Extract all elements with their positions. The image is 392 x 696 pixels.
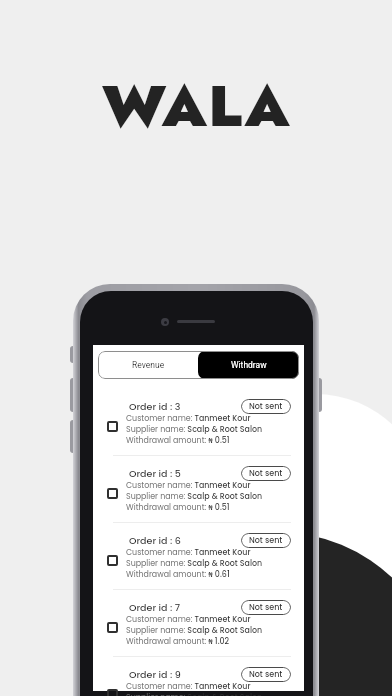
staticText: Customer name: Tanmeet Kour — [126, 614, 251, 625]
staticText: Withdrawal amount: ₦ 0.51 — [126, 502, 230, 513]
button[interactable]: Not sent — [241, 667, 291, 682]
staticText: WALA — [102, 64, 291, 148]
button[interactable]: Not sent — [241, 399, 291, 414]
staticText: Order id : 9 — [129, 668, 181, 681]
button[interactable]: Select order 5 — [107, 488, 118, 499]
staticText: Not sent — [249, 669, 283, 680]
staticText: Order id : 5 — [129, 467, 181, 480]
staticText: Order id : 7 — [129, 601, 181, 614]
staticText: Not sent — [249, 401, 283, 412]
staticText: Order id : 3 — [129, 400, 181, 413]
button[interactable]: Select order 9 — [107, 689, 118, 696]
staticText: Revenue — [132, 360, 165, 370]
staticText: Supplier name: Scalp & Root Salon — [126, 692, 263, 696]
staticText: Order id : 6 — [129, 534, 181, 547]
staticText: Withdrawal amount: ₦ 0.61 — [126, 569, 230, 580]
button[interactable]: Select order 5 — [93, 457, 304, 524]
button[interactable]: Select order 6 — [107, 555, 118, 566]
staticText: Not sent — [249, 602, 283, 613]
button[interactable]: Select order 3 — [93, 390, 304, 457]
button[interactable]: Revenue — [98, 351, 198, 379]
button[interactable]: Select order 6 — [93, 524, 304, 591]
staticText: Supplier name: Scalp & Root Salon — [126, 491, 263, 502]
button[interactable]: Not sent — [241, 600, 291, 615]
staticText: Customer name: Tanmeet Kour — [126, 681, 251, 692]
button[interactable]: Select order 3 — [107, 421, 118, 432]
button[interactable]: Select order 9 — [93, 658, 304, 696]
staticText: Withdrawal amount: ₦ 0.51 — [126, 435, 230, 446]
staticText: Not sent — [249, 535, 283, 546]
staticText: Supplier name: Scalp & Root Salon — [126, 558, 263, 569]
staticText: Customer name: Tanmeet Kour — [126, 547, 251, 558]
staticText: Not sent — [249, 468, 283, 479]
staticText: Customer name: Tanmeet Kour — [126, 480, 251, 491]
staticText: Supplier name: Scalp & Root Salon — [126, 625, 263, 636]
staticText: Withdraw — [231, 360, 267, 370]
staticText: Supplier name: Scalp & Root Salon — [126, 424, 263, 435]
staticText: Customer name: Tanmeet Kour — [126, 413, 251, 424]
button[interactable]: Select order 7 — [107, 622, 118, 633]
button[interactable]: Withdraw — [198, 351, 299, 379]
button[interactable]: Not sent — [241, 533, 291, 548]
staticText: Withdrawal amount: ₦ 1.02 — [126, 636, 230, 647]
button[interactable]: Select order 7 — [93, 591, 304, 658]
button[interactable]: Not sent — [241, 466, 291, 481]
